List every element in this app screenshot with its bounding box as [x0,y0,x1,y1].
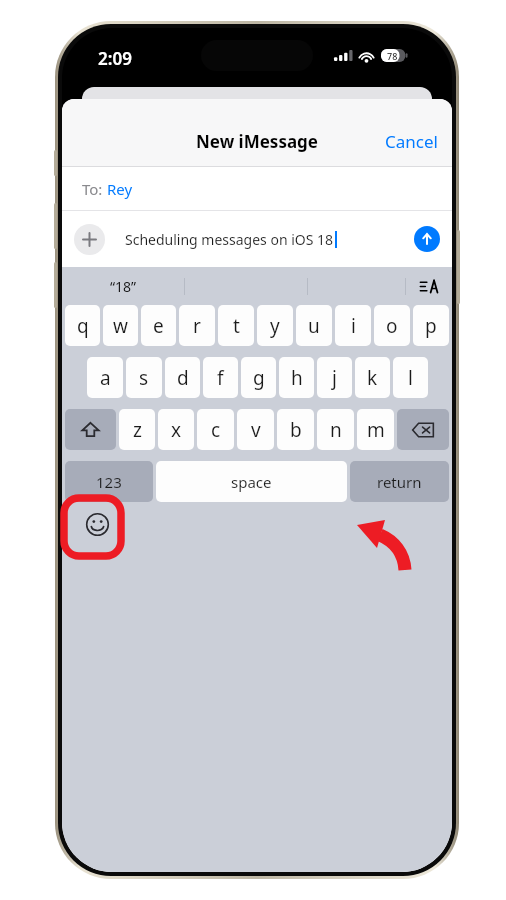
button[interactable]: y [257,305,293,346]
button[interactable]: Send [414,226,440,252]
staticText: j [332,365,337,391]
staticText: x [171,417,182,443]
button[interactable]: Shift [65,409,116,450]
button[interactable]: q [65,305,100,346]
button[interactable]: k [355,357,390,398]
button[interactable]: i [335,305,371,346]
staticText: return [377,472,422,492]
button[interactable]: Add attachment [74,224,105,255]
staticText: o [386,313,398,339]
staticText: t [233,313,240,339]
staticText: Scheduling messages on iOS 18 [125,230,334,249]
staticText: 2:09 [98,47,132,70]
button[interactable]: t [218,305,254,346]
staticText: a [100,365,111,391]
button[interactable]: 123 [65,461,153,502]
staticText: Cancel [385,130,438,153]
staticText: z [133,417,142,443]
staticText: v [251,417,261,443]
staticText: g [253,365,265,391]
staticText: w [113,313,128,339]
staticText: 123 [96,472,122,492]
button[interactable]: h [279,357,314,398]
staticText: “18” [110,277,137,296]
staticText: u [308,313,320,339]
button[interactable]: a [87,357,123,398]
button[interactable]: space [156,461,347,502]
button[interactable]: g [241,357,276,398]
staticText: c [211,417,221,443]
staticText: b [290,417,302,443]
staticText: m [367,417,385,443]
staticText: Rey [107,179,133,199]
button[interactable]: d [165,357,200,398]
button[interactable]: Backspace [397,409,449,450]
staticText: 78 [387,50,398,62]
staticText: i [351,313,356,339]
staticText: p [425,313,437,339]
staticText: l [408,365,413,391]
staticText: r [193,313,201,339]
button[interactable]: f [203,357,238,398]
button[interactable]: u [296,305,332,346]
button[interactable]: o [374,305,410,346]
staticText: n [330,417,342,443]
button[interactable]: w [103,305,138,346]
staticText: k [367,365,378,391]
button[interactable]: b [277,409,314,450]
button[interactable]: “18” [62,267,184,305]
staticText: s [139,365,149,391]
button[interactable]: x [158,409,194,450]
staticText: New iMessage [196,130,319,153]
staticText: q [77,313,89,339]
staticText: e [153,313,164,339]
button[interactable]: s [126,357,162,398]
staticText: y [270,313,280,339]
button[interactable]: p [413,305,449,346]
staticText: space [231,472,272,492]
button[interactable]: z [119,409,155,450]
button[interactable]: Scheduling messages on iOS 18 [115,223,408,256]
button[interactable]: Emoji keyboard [84,511,110,537]
button[interactable]: j [317,357,352,398]
button[interactable]: To: [62,167,452,210]
button[interactable]: r [179,305,215,346]
staticText: d [177,365,189,391]
staticText: To: [82,179,107,199]
staticText: f [217,365,224,391]
button[interactable]: c [197,409,234,450]
button[interactable]: e [141,305,176,346]
button[interactable]: m [357,409,394,450]
staticText: h [291,365,303,391]
button[interactable]: Text formatting [406,267,452,305]
button[interactable]: n [317,409,354,450]
button[interactable]: return [350,461,449,502]
button[interactable]: Cancel [371,122,452,161]
button[interactable]: l [393,357,428,398]
button[interactable]: v [237,409,274,450]
